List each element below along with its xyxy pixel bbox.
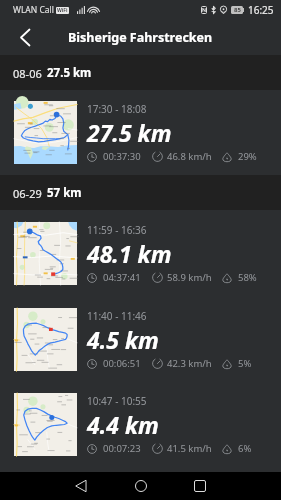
staticText: 08-06 xyxy=(13,66,42,81)
button[interactable]: Back xyxy=(58,472,104,500)
staticText: 57 km xyxy=(47,185,82,201)
staticText: 04:37:41 xyxy=(103,271,141,284)
button[interactable]: Back xyxy=(5,20,45,55)
staticText: 6% xyxy=(238,442,252,455)
button[interactable]: 11:40 - 11:46 xyxy=(0,296,281,381)
staticText: 27.5 km xyxy=(47,65,92,81)
staticText: 00:07:23 xyxy=(103,442,141,455)
staticText: 5% xyxy=(238,357,252,370)
staticText: 58% xyxy=(238,271,257,284)
staticText: 11:40 - 11:46 xyxy=(87,309,147,323)
staticText: WiFi xyxy=(57,7,68,14)
staticText: 10:47 - 10:55 xyxy=(87,394,147,408)
staticText: 16:25 xyxy=(248,3,274,17)
button[interactable]: 10:47 - 10:55 xyxy=(0,381,281,472)
staticText: 29% xyxy=(238,150,257,163)
staticText: 11:59 - 16:36 xyxy=(87,223,147,237)
staticText: 4.5 km xyxy=(87,324,159,355)
staticText: 4.4 km xyxy=(87,409,159,440)
staticText: 00:06:51 xyxy=(103,357,141,370)
staticText: 48.1 km xyxy=(87,238,172,269)
staticText: 17:30 - 18:08 xyxy=(87,102,147,116)
staticText: 00:37:30 xyxy=(103,150,141,163)
staticText: WLAN Call xyxy=(13,4,54,16)
staticText: 46.8 km/h xyxy=(167,150,212,163)
staticText: 41.5 km/h xyxy=(167,442,212,455)
staticText: 58.9 km/h xyxy=(167,271,212,284)
staticText: 85 xyxy=(234,6,241,14)
staticText: 27.5 km xyxy=(87,117,172,148)
button[interactable]: 17:30 - 18:08 xyxy=(0,90,281,175)
button[interactable]: Home xyxy=(118,472,164,500)
staticText: 06-29 xyxy=(13,186,42,201)
button[interactable]: Recents xyxy=(177,472,223,500)
button[interactable]: 11:59 - 16:36 xyxy=(0,210,281,296)
staticText: 42.3 km/h xyxy=(167,357,212,370)
staticText: Bisherige Fahrstrecken xyxy=(68,29,213,46)
